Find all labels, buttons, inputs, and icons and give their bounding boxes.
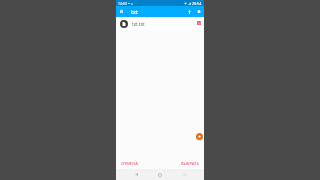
button[interactable]: ОТМЕНА xyxy=(119,159,140,168)
button[interactable]: ВЫБРАТЬ xyxy=(179,159,201,168)
button[interactable]: Upload xyxy=(184,6,194,17)
button[interactable]: Selected xyxy=(194,16,203,29)
staticText: txt xyxy=(131,8,138,15)
staticText: txt.txt xyxy=(132,21,145,27)
staticText: ОТМЕНА xyxy=(121,161,138,166)
button[interactable]: Open navigation menu xyxy=(117,6,128,17)
button[interactable]: Home xyxy=(194,6,204,17)
button[interactable]: Home xyxy=(155,169,165,180)
button[interactable]: Back xyxy=(131,169,141,180)
button[interactable]: txt.txt xyxy=(116,17,204,30)
button[interactable]: Create new file xyxy=(196,133,203,140)
staticText: 14:03 xyxy=(118,1,127,6)
staticText: 20:54 xyxy=(192,1,202,6)
staticText: ВЫБРАТЬ xyxy=(181,161,199,166)
